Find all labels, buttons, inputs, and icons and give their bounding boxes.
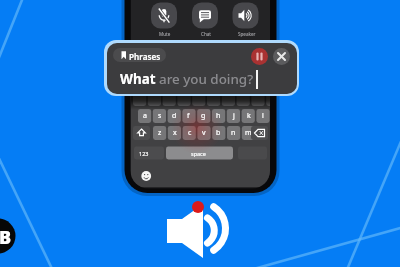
staticText: What (120, 70, 159, 88)
button[interactable]: Phrases (113, 48, 166, 62)
staticText: Phrases (129, 51, 161, 62)
staticText: B (0, 225, 12, 245)
staticText: Speaker (238, 31, 256, 37)
button[interactable]: Close (273, 48, 290, 65)
staticText: s (158, 111, 162, 121)
staticText: b (216, 128, 221, 138)
staticText: l (262, 111, 264, 121)
staticText: m (245, 128, 252, 138)
staticText: space (191, 150, 206, 157)
staticText: k (247, 111, 251, 121)
staticText: Mute (159, 31, 171, 37)
staticText: 123 (139, 150, 149, 157)
staticText: x (173, 128, 177, 138)
staticText: a (143, 111, 147, 121)
staticText: j (233, 111, 235, 121)
staticText: Chat (201, 31, 211, 37)
button[interactable]: Pause (251, 48, 268, 65)
staticText: h (216, 111, 221, 121)
staticText: g (201, 111, 206, 121)
staticText: are you doing? (159, 70, 254, 88)
staticText: v (202, 128, 206, 138)
staticText: c (188, 128, 192, 138)
staticText: d (172, 111, 177, 121)
staticText: z (158, 128, 162, 138)
staticText: f (187, 111, 190, 121)
staticText: n (231, 128, 236, 138)
